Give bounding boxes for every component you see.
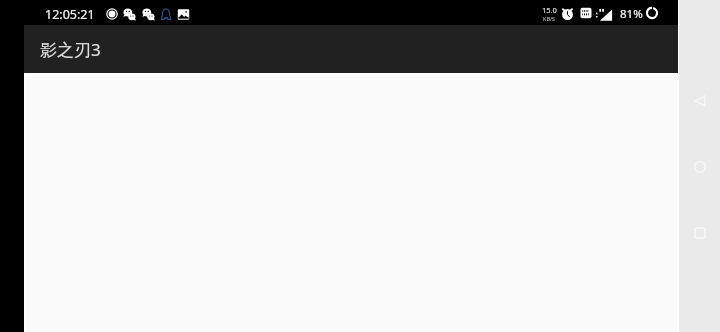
staticText: KB/S bbox=[543, 15, 556, 22]
staticText: 影之刃3 bbox=[40, 38, 101, 61]
staticText: 81% bbox=[620, 6, 643, 22]
staticText: 12:05:21 bbox=[45, 6, 95, 23]
staticText: 15.0 bbox=[542, 5, 557, 15]
button[interactable]: 影之刃3 bbox=[24, 25, 679, 73]
